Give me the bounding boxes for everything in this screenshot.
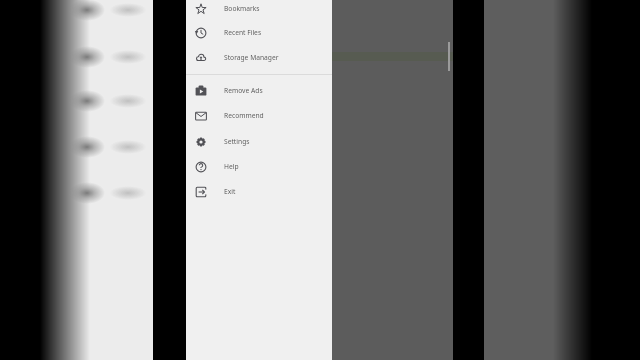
staticText: Remove Ads [224,86,263,95]
staticText: Help [224,162,239,171]
button[interactable]: Storage Manager [186,45,332,70]
button[interactable]: Recommend [186,103,332,128]
button[interactable]: Bookmarks [186,0,332,21]
staticText: Settings [224,137,250,146]
button[interactable]: Settings [186,129,332,154]
button[interactable]: Help [186,154,332,179]
button[interactable]: Remove Ads [186,78,332,103]
button[interactable]: Exit [186,179,332,204]
staticText: Bookmarks [224,4,260,13]
staticText: Storage Manager [224,53,279,62]
staticText: Recent Files [224,28,262,37]
staticText: Recommend [224,111,264,120]
staticText: Exit [224,187,236,196]
button[interactable]: Recent Files [186,20,332,45]
